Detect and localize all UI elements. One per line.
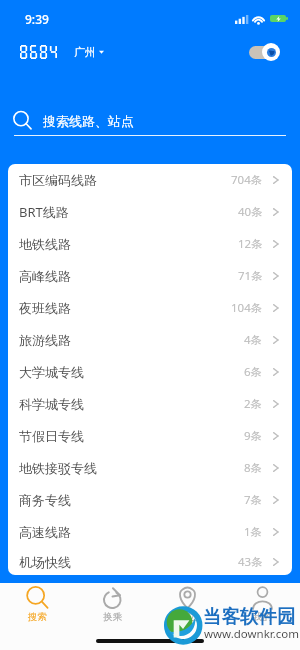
button[interactable]: 地铁线路 <box>8 228 292 260</box>
staticText: 104条 <box>231 300 263 316</box>
staticText: 43条 <box>238 554 263 570</box>
button[interactable]: 机场快线 <box>8 548 292 575</box>
staticText: 4条 <box>244 332 263 348</box>
staticText: 高峰线路 <box>19 268 71 284</box>
staticText: 71条 <box>238 268 263 284</box>
staticText: 机场快线 <box>19 554 71 570</box>
staticText: 夜班线路 <box>19 300 71 316</box>
staticText: 搜索 <box>28 611 47 623</box>
staticText: 9条 <box>244 428 263 444</box>
staticText: 旅游线路 <box>19 332 71 348</box>
staticText: 8条 <box>244 460 263 476</box>
button[interactable]: BRT线路 <box>8 196 292 228</box>
button[interactable]: 我的 <box>225 583 300 625</box>
staticText: 2条 <box>244 396 263 412</box>
staticText: 地铁接驳专线 <box>19 460 97 476</box>
button[interactable]: 地铁接驳专线 <box>8 452 292 484</box>
button[interactable]: 大学城专线 <box>8 356 292 388</box>
staticText: 科学城专线 <box>19 396 84 412</box>
staticText: 节假日专线 <box>19 428 84 444</box>
button[interactable]: 市区编码线路 <box>8 164 292 196</box>
staticText: 大学城专线 <box>19 364 84 380</box>
staticText: 换乘 <box>103 611 122 623</box>
button[interactable]: 搜索线路、站点 <box>0 105 300 136</box>
button[interactable]: 高速线路 <box>8 516 292 548</box>
staticText: 9:39 <box>25 11 49 27</box>
staticText: 搜索线路、站点 <box>43 113 134 129</box>
button[interactable]: 夜班线路 <box>8 292 292 324</box>
button[interactable]: 高峰线路 <box>8 260 292 292</box>
staticText: BRT线路 <box>19 203 69 221</box>
button[interactable]: 换乘 <box>75 583 150 625</box>
button[interactable]: 商务专线 <box>8 484 292 516</box>
staticText: 地铁线路 <box>19 236 71 252</box>
button[interactable]: 科学城专线 <box>8 388 292 420</box>
staticText: 6条 <box>244 364 263 380</box>
staticText: 市区编码线路 <box>19 172 97 188</box>
staticText: 1条 <box>244 524 263 540</box>
button[interactable]: 广州 <box>74 44 108 60</box>
staticText: 周边 <box>178 611 197 623</box>
staticText: 我的 <box>253 611 272 623</box>
button[interactable]: 旅游线路 <box>8 324 292 356</box>
staticText: 商务专线 <box>19 492 71 508</box>
staticText: 704条 <box>231 172 263 188</box>
staticText: 12条 <box>238 236 263 252</box>
button[interactable]: 周边 <box>150 583 225 625</box>
staticText: 当客软件园 <box>203 605 296 628</box>
staticText: www.downkr.com <box>204 626 300 642</box>
staticText: 广州 <box>74 45 96 59</box>
staticText: 7条 <box>244 492 263 508</box>
staticText: 高速线路 <box>19 524 71 540</box>
staticText: 40条 <box>238 204 263 220</box>
button[interactable]: 节假日专线 <box>8 420 292 452</box>
button[interactable]: Toggle map mode <box>247 40 283 64</box>
button[interactable]: 搜索 <box>0 583 75 625</box>
